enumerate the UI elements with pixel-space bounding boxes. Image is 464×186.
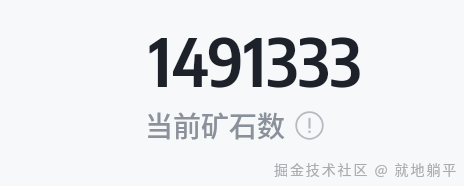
staticText: 1491333	[150, 19, 364, 101]
staticText: 掘金技术社区 @ 就地躺平	[274, 159, 459, 179]
staticText: 1491333	[149, 19, 363, 101]
button[interactable]: 当前矿石数	[145, 105, 324, 146]
other: Info	[295, 111, 324, 140]
staticText: 当前矿石数	[145, 105, 286, 146]
